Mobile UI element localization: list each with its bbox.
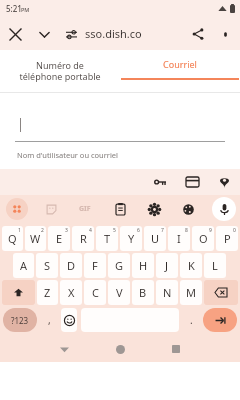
- button[interactable]: Passwords: [152, 174, 168, 190]
- staticText: Z: [44, 285, 51, 300]
- button[interactable]: Recent apps: [165, 338, 187, 360]
- button[interactable]: Z: [37, 280, 58, 305]
- staticText: M: [186, 285, 196, 300]
- staticText: A: [20, 258, 28, 273]
- button[interactable]: S: [36, 253, 58, 278]
- staticText: H: [139, 258, 148, 273]
- button[interactable]: Back: [53, 338, 75, 360]
- staticText: V: [116, 285, 123, 300]
- button[interactable]: Courriel: [120, 50, 240, 92]
- button[interactable]: Period: [181, 306, 201, 334]
- staticText: 0: [233, 227, 236, 234]
- button[interactable]: Payment methods: [184, 174, 200, 190]
- staticText: Nom d'utilisateur ou courriel: [17, 150, 119, 160]
- button[interactable]: I: [168, 226, 190, 251]
- button[interactable]: D: [60, 253, 82, 278]
- button[interactable]: Clipboard: [110, 199, 130, 219]
- staticText: F: [92, 258, 98, 273]
- staticText: 5: [113, 227, 116, 234]
- staticText: 7: [161, 227, 164, 234]
- button[interactable]: Stickers: [41, 199, 61, 219]
- staticText: T: [104, 231, 111, 246]
- button[interactable]: W: [25, 226, 46, 251]
- button[interactable]: Backspace: [204, 280, 238, 305]
- button[interactable]: L: [204, 253, 226, 278]
- button[interactable]: G: [108, 253, 130, 278]
- staticText: Numéro de téléphone portable: [19, 59, 101, 83]
- staticText: 4: [89, 227, 92, 234]
- button[interactable]: M: [180, 280, 202, 305]
- staticText: 2: [41, 227, 44, 234]
- staticText: PM: [21, 6, 30, 13]
- button[interactable]: R: [72, 226, 94, 251]
- staticText: Courriel: [163, 58, 197, 70]
- button[interactable]: H: [132, 253, 154, 278]
- button[interactable]: P: [216, 226, 238, 251]
- staticText: ?123: [11, 315, 29, 326]
- staticText: G: [115, 258, 124, 273]
- button[interactable]: C: [84, 280, 106, 305]
- button[interactable]: Q: [2, 226, 23, 251]
- staticText: Y: [128, 231, 135, 246]
- staticText: N: [163, 285, 172, 300]
- button[interactable]: Y: [120, 226, 142, 251]
- staticText: E: [56, 231, 63, 246]
- button[interactable]: V: [108, 280, 130, 305]
- staticText: 6: [137, 227, 140, 234]
- button[interactable]: A: [13, 253, 34, 278]
- button[interactable]: Addresses: [216, 174, 232, 190]
- staticText: ,: [48, 313, 51, 327]
- button[interactable]: Page info: [60, 23, 82, 45]
- button[interactable]: Home: [109, 338, 131, 360]
- button[interactable]: T: [96, 226, 118, 251]
- staticText: J: [165, 258, 169, 273]
- button[interactable]: Settings: [144, 199, 164, 219]
- staticText: 5:21: [6, 3, 22, 14]
- button[interactable]: N: [156, 280, 178, 305]
- staticText: C: [92, 285, 99, 300]
- staticText: R: [80, 231, 87, 246]
- button[interactable]: GIF: [74, 198, 96, 220]
- button[interactable]: Shift: [2, 280, 35, 305]
- staticText: sso.dish.co: [85, 26, 142, 41]
- button[interactable]: F: [84, 253, 106, 278]
- staticText: 9: [209, 227, 212, 234]
- button[interactable]: Comma: [39, 306, 59, 334]
- button[interactable]: ?123: [3, 308, 37, 332]
- button[interactable]: Voice input: [212, 197, 236, 221]
- staticText: K: [188, 258, 195, 273]
- button[interactable]: B: [132, 280, 154, 305]
- button[interactable]: Emoji: [61, 308, 77, 332]
- button[interactable]: Themes: [178, 199, 198, 219]
- staticText: X: [68, 285, 75, 300]
- button[interactable]: Share: [184, 20, 212, 48]
- button[interactable]: K: [180, 253, 202, 278]
- button[interactable]: X: [60, 280, 82, 305]
- staticText: 1: [18, 227, 21, 234]
- staticText: 8: [185, 227, 188, 234]
- staticText: Q: [8, 231, 17, 246]
- staticText: L: [212, 258, 218, 273]
- button[interactable]: U: [144, 226, 166, 251]
- staticText: S: [44, 258, 51, 273]
- button[interactable]: Toolbox: [6, 198, 28, 220]
- button[interactable]: More options: [212, 21, 238, 47]
- staticText: .: [190, 313, 193, 327]
- staticText: U: [151, 231, 160, 246]
- staticText: 3: [65, 227, 68, 234]
- button[interactable]: Numéro de téléphone portable: [0, 50, 120, 92]
- staticText: GIF: [79, 204, 91, 214]
- staticText: W: [30, 231, 41, 246]
- button[interactable]: Close: [0, 19, 30, 49]
- button[interactable]: Next: [203, 308, 237, 332]
- staticText: O: [199, 231, 208, 246]
- button[interactable]: J: [156, 253, 178, 278]
- staticText: P: [224, 231, 231, 246]
- button[interactable]: Expand: [30, 20, 58, 48]
- staticText: D: [67, 258, 76, 273]
- staticText: I: [177, 231, 181, 246]
- button[interactable]: E: [48, 226, 70, 251]
- staticText: B: [139, 285, 147, 300]
- button[interactable]: O: [192, 226, 214, 251]
